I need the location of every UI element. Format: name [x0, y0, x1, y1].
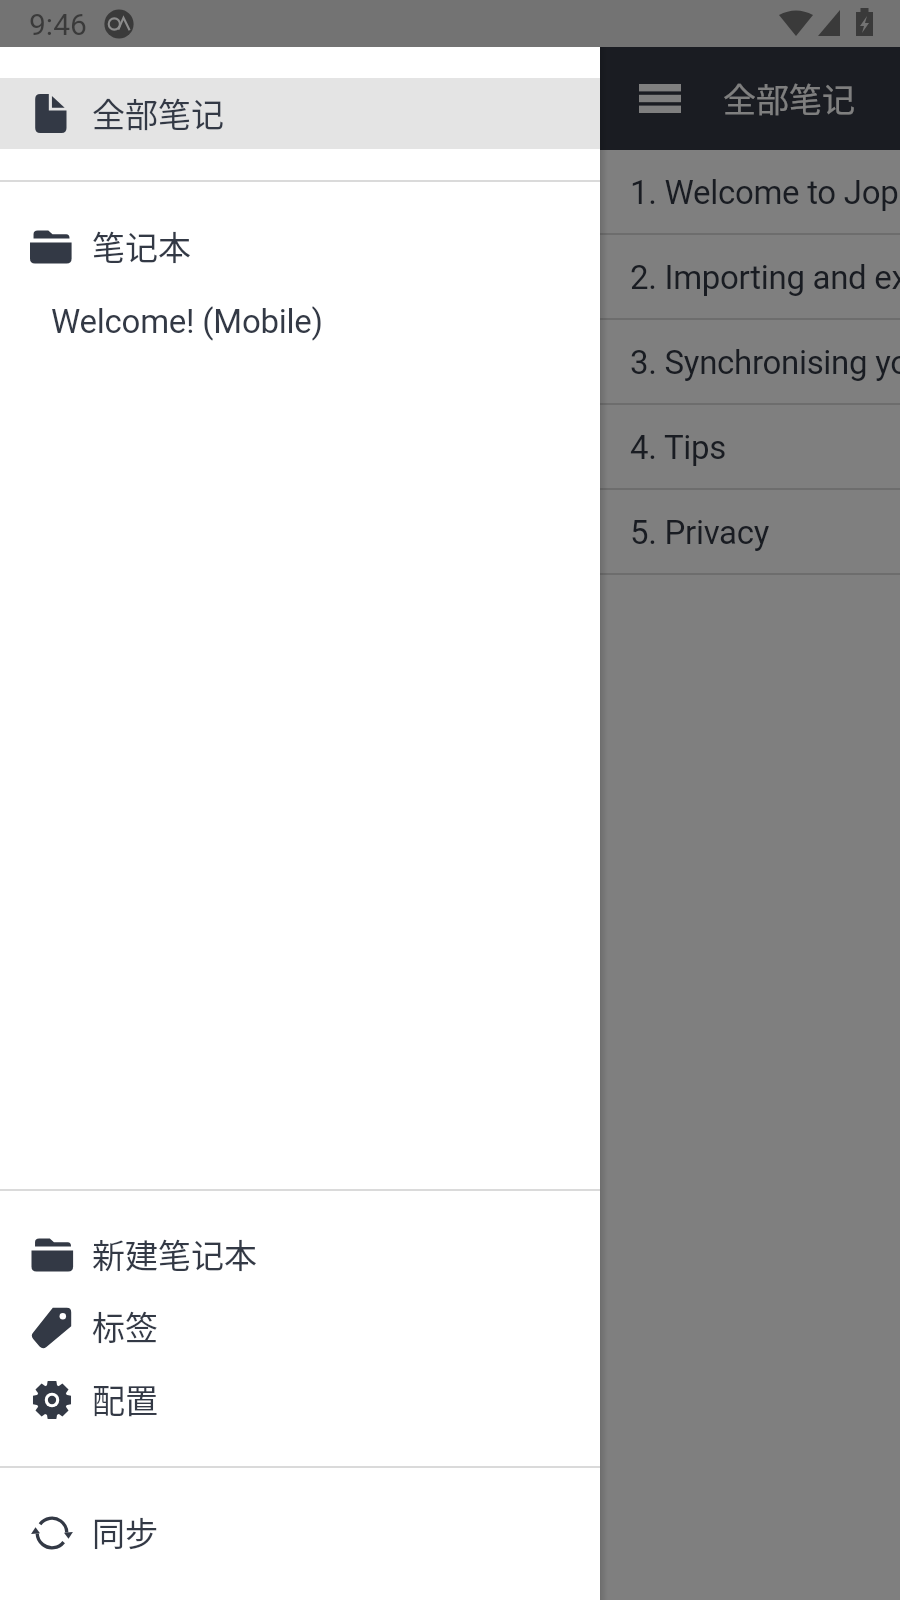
- staticText: 1. Welcome to Joplin!: [630, 173, 900, 212]
- button[interactable]: 全部笔记: [0, 78, 600, 149]
- staticText: 同步: [92, 1508, 158, 1556]
- button[interactable]: 同步: [0, 1498, 600, 1568]
- button[interactable]: 3. Synchronising your notes: [600, 320, 900, 405]
- staticText: 5. Privacy: [630, 513, 770, 552]
- staticText: Welcome! (Mobile): [51, 302, 323, 341]
- staticText: 9:46: [29, 7, 87, 42]
- staticText: 标签: [92, 1302, 158, 1350]
- button[interactable]: Open navigation drawer: [600, 47, 720, 150]
- button[interactable]: 新建笔记本: [0, 1220, 600, 1290]
- button[interactable]: Welcome! (Mobile): [0, 286, 600, 356]
- staticText: 3. Synchronising your notes: [630, 343, 900, 382]
- button[interactable]: 2. Importing and exporting notes: [600, 235, 900, 320]
- staticText: 配置: [92, 1375, 158, 1423]
- button[interactable]: 4. Tips: [600, 405, 900, 490]
- staticText: 全部笔记: [92, 89, 224, 137]
- button[interactable]: 笔记本: [0, 212, 600, 282]
- staticText: 新建笔记本: [92, 1230, 257, 1278]
- staticText: 4. Tips: [630, 428, 726, 467]
- button[interactable]: 5. Privacy: [600, 490, 900, 575]
- staticText: 2. Importing and exporting notes: [630, 258, 900, 297]
- button[interactable]: 标签: [0, 1292, 600, 1362]
- button[interactable]: 配置: [0, 1365, 600, 1435]
- staticText: 全部笔记: [723, 74, 855, 122]
- button[interactable]: 1. Welcome to Joplin!: [600, 150, 900, 235]
- staticText: 笔记本: [92, 222, 191, 270]
